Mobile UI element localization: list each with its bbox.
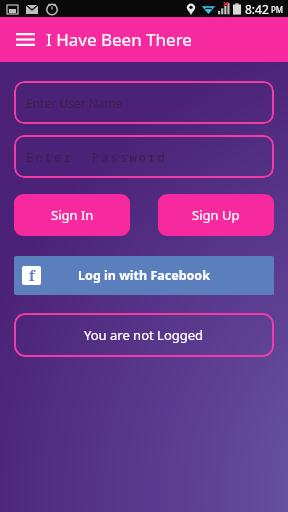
staticText: I Have Been There bbox=[46, 28, 192, 51]
staticText: Sign Up bbox=[192, 206, 240, 224]
staticText: 8:42 bbox=[245, 1, 269, 17]
staticText: Sign In bbox=[51, 206, 94, 224]
staticText: PM bbox=[271, 4, 284, 15]
staticText: f bbox=[29, 266, 35, 285]
button[interactable]: Sign Up bbox=[158, 194, 274, 236]
staticText: You are not Logged bbox=[84, 326, 204, 344]
button[interactable]: Enter User Name bbox=[14, 81, 274, 124]
staticText: Enter Password bbox=[26, 149, 168, 165]
button[interactable]: Enter Password bbox=[14, 135, 274, 178]
button[interactable]: You are not Logged bbox=[14, 313, 274, 357]
button[interactable]: Open navigation menu bbox=[10, 25, 40, 55]
staticText: Log in with Facebook bbox=[41, 267, 247, 284]
staticText: Enter User Name bbox=[26, 95, 123, 111]
button[interactable]: Sign In bbox=[14, 194, 130, 236]
button[interactable]: f bbox=[14, 256, 274, 295]
